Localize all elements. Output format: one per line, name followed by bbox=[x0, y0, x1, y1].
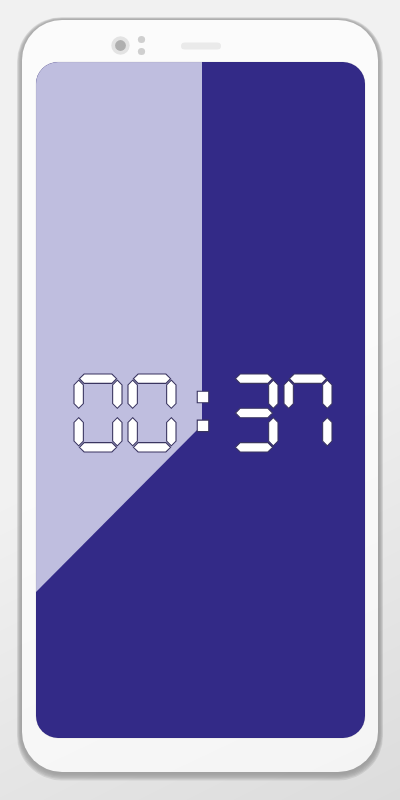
button[interactable]: Digital clock wallpaper preview bbox=[0, 0, 400, 800]
